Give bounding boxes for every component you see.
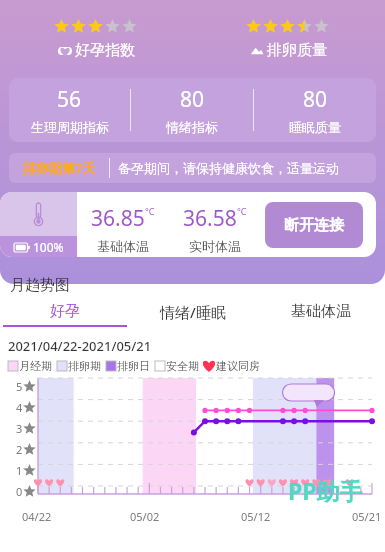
staticText: 05/21 <box>352 509 382 524</box>
staticText: 排卵质量 <box>267 41 327 60</box>
staticText: 05/12 <box>241 509 271 524</box>
staticText: 备孕期间，请保持健康饮食，适量运动 <box>118 160 339 176</box>
button[interactable]: 情绪/睡眠 <box>129 301 257 329</box>
button[interactable]: 基础体温 <box>257 301 385 329</box>
staticText: 基础体温 <box>97 238 149 254</box>
staticText: 生理周期指标 <box>31 119 109 135</box>
button[interactable]: 80 <box>131 78 253 142</box>
staticText: 排卵期 <box>68 359 101 373</box>
staticText: 好孕指数 <box>75 41 135 60</box>
staticText: 05/02 <box>130 509 160 524</box>
staticText: 建议同房 <box>216 359 260 373</box>
staticText: 月趋势图 <box>10 276 70 295</box>
staticText: 80 <box>303 85 328 114</box>
staticText: 睡眠质量 <box>289 119 341 135</box>
staticText: °C <box>237 205 247 217</box>
other: Thermometer <box>33 202 44 226</box>
staticText: 80 <box>180 85 205 114</box>
button[interactable]: 好孕 <box>0 301 129 329</box>
staticText: 排卵日 <box>117 359 150 373</box>
staticText: 断开连接 <box>284 216 344 235</box>
other: Battery <box>14 243 30 252</box>
staticText: 36.85 <box>91 204 145 233</box>
staticText: 2 <box>16 442 23 457</box>
staticText: 5 <box>16 379 23 394</box>
staticText: 56 <box>57 85 82 114</box>
staticText: PP助手 <box>288 475 363 506</box>
staticText: 安全期 <box>166 359 199 373</box>
staticText: 排卵期第7天 <box>23 159 96 177</box>
button[interactable]: 好孕指数 <box>0 0 192 78</box>
button[interactable]: 排卵期第7天 <box>9 153 376 183</box>
staticText: 2021/04/22-2021/05/21 <box>8 337 152 355</box>
staticText: 36.58 <box>183 204 237 233</box>
staticText: 04/22 <box>22 509 52 524</box>
staticText: 1 <box>16 463 23 478</box>
staticText: 3 <box>16 421 23 436</box>
staticText: 0 <box>16 484 23 499</box>
staticText: 4 <box>16 400 23 415</box>
staticText: 好孕 <box>50 302 80 321</box>
staticText: 情绪/睡眠 <box>160 302 226 322</box>
staticText: 情绪指标 <box>166 119 218 135</box>
button[interactable]: 断开连接 <box>265 202 363 248</box>
button[interactable]: 56 <box>9 78 130 142</box>
staticText: °C <box>145 205 155 217</box>
staticText: 实时体温 <box>189 238 241 254</box>
button[interactable]: 排卵质量 <box>192 0 385 78</box>
staticText: 100% <box>33 239 64 255</box>
staticText: 基础体温 <box>291 302 351 321</box>
button[interactable]: 80 <box>254 78 376 142</box>
staticText: 月经期 <box>19 359 52 373</box>
